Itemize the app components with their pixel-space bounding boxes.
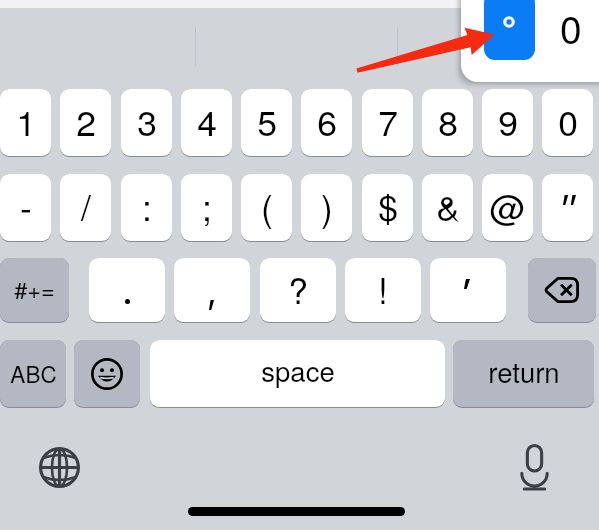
button[interactable]: Degree key bbox=[484, 0, 535, 60]
staticText: 5 bbox=[257, 95, 277, 146]
button[interactable]: Dictation bbox=[506, 441, 563, 493]
staticText: @ bbox=[489, 180, 526, 231]
staticText: & bbox=[436, 180, 460, 231]
staticText: ? bbox=[288, 263, 308, 314]
staticText: 7 bbox=[378, 95, 398, 146]
staticText: $ bbox=[378, 180, 398, 231]
button[interactable]: ( bbox=[241, 174, 292, 241]
button[interactable] bbox=[542, 174, 593, 241]
button[interactable]: #+= bbox=[0, 258, 69, 322]
button[interactable]: 1 bbox=[0, 89, 51, 156]
button[interactable]: ABC bbox=[0, 340, 66, 407]
button[interactable]: @ bbox=[482, 174, 533, 241]
button[interactable]: 4 bbox=[181, 89, 232, 156]
staticText: 8 bbox=[438, 95, 458, 146]
button[interactable]: & bbox=[422, 174, 473, 241]
button[interactable]: : bbox=[121, 174, 172, 241]
button[interactable]: 8 bbox=[422, 89, 473, 156]
button[interactable]: Backspace bbox=[528, 258, 596, 322]
staticText: ) bbox=[321, 180, 333, 231]
staticText: ! bbox=[378, 263, 388, 314]
button[interactable]: 6 bbox=[301, 89, 352, 156]
button[interactable]: 7 bbox=[362, 89, 413, 156]
staticText: #+= bbox=[14, 272, 55, 306]
button[interactable]: ? bbox=[260, 258, 336, 322]
button[interactable]: $ bbox=[362, 174, 413, 241]
button[interactable]: 5 bbox=[241, 89, 292, 156]
staticText: return bbox=[488, 351, 560, 390]
button[interactable]: return bbox=[453, 340, 594, 407]
staticText: / bbox=[81, 180, 91, 231]
staticText: : bbox=[142, 180, 152, 231]
staticText: ; bbox=[202, 180, 212, 231]
staticText: ( bbox=[261, 180, 273, 231]
button[interactable]: Change keyboard bbox=[31, 439, 87, 495]
button[interactable] bbox=[89, 258, 165, 322]
button[interactable]: Emoji bbox=[74, 340, 140, 407]
staticText: space bbox=[261, 350, 335, 389]
button[interactable]: ; bbox=[181, 174, 232, 241]
button[interactable]: 9 bbox=[482, 89, 533, 156]
staticText: 1 bbox=[16, 95, 36, 146]
staticText: 9 bbox=[498, 95, 518, 146]
staticText: ABC bbox=[10, 357, 57, 389]
staticText: 0 bbox=[560, 0, 582, 55]
button[interactable]: / bbox=[60, 174, 111, 241]
button[interactable]: ) bbox=[301, 174, 352, 241]
button[interactable]: 3 bbox=[121, 89, 172, 156]
staticText: 0 bbox=[558, 95, 578, 146]
staticText: 6 bbox=[317, 95, 337, 146]
button[interactable]: 2 bbox=[60, 89, 111, 156]
staticText: - bbox=[20, 180, 32, 231]
button[interactable]: ! bbox=[345, 258, 421, 322]
staticText: 4 bbox=[197, 95, 217, 146]
staticText: 3 bbox=[137, 95, 157, 146]
button[interactable]: - bbox=[0, 174, 51, 241]
button[interactable]: space bbox=[150, 340, 445, 407]
button[interactable] bbox=[174, 258, 250, 322]
button[interactable]: 0 bbox=[542, 89, 593, 156]
button[interactable] bbox=[430, 258, 506, 322]
staticText: 2 bbox=[76, 95, 96, 146]
